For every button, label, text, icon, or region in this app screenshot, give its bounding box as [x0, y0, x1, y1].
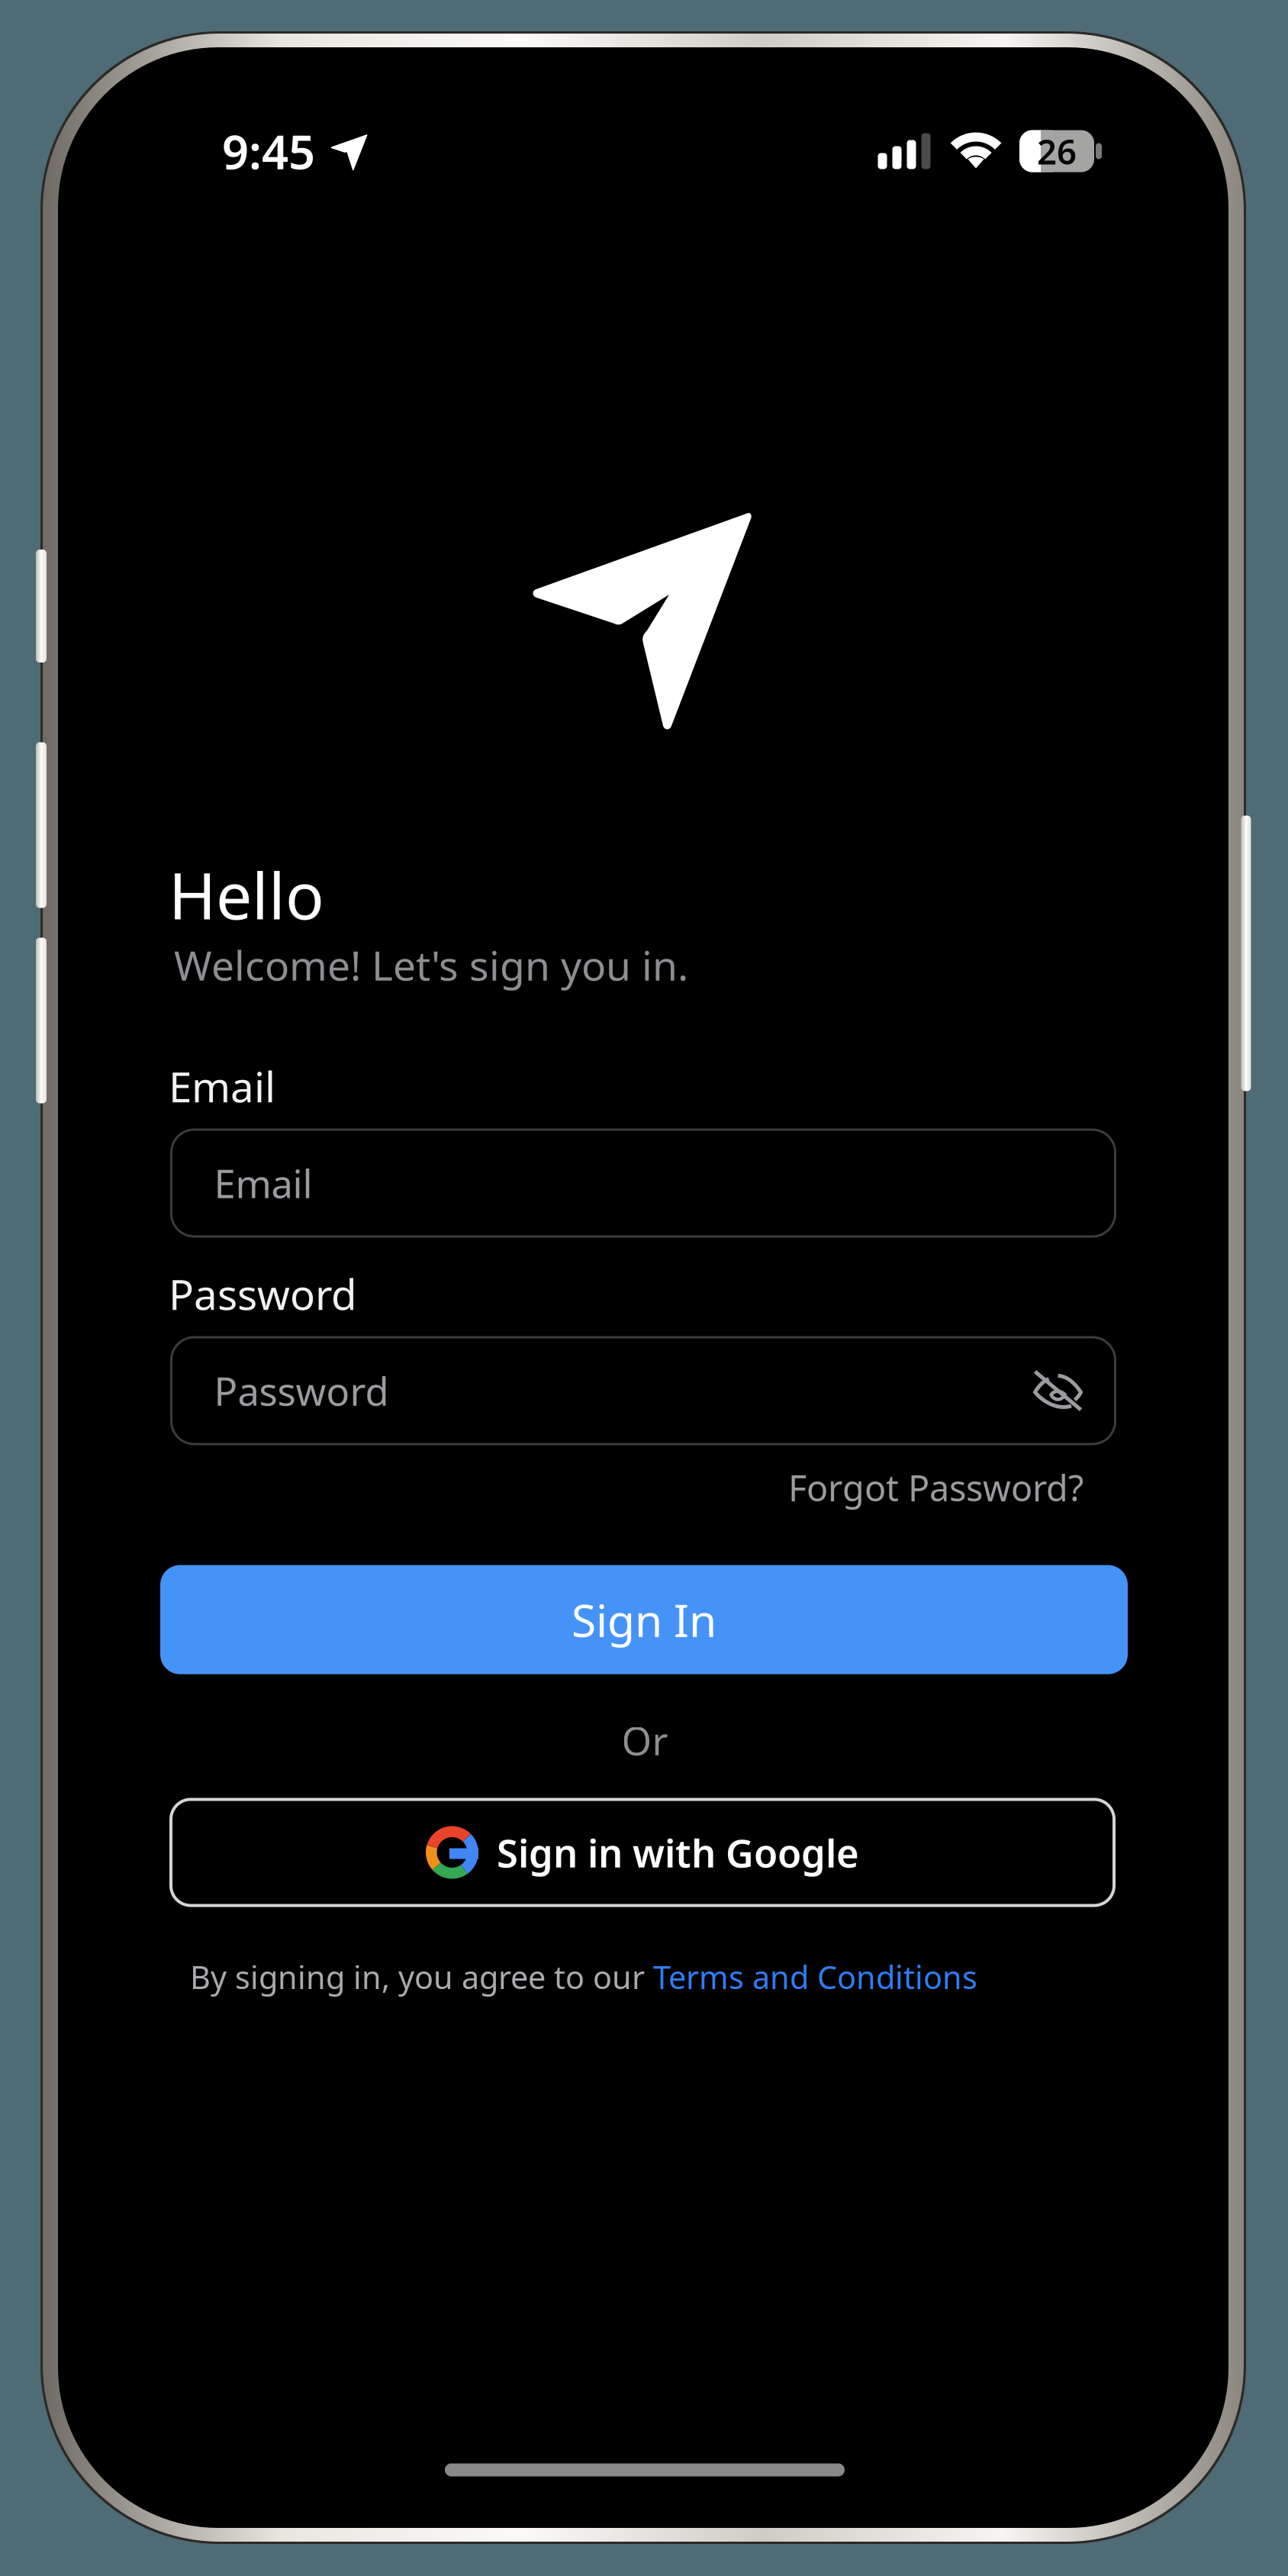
- staticText: Password: [169, 1266, 357, 1321]
- staticText: Or: [621, 1715, 668, 1766]
- staticText: Sign in with Google: [497, 1827, 859, 1878]
- button[interactable]: Forgot Password?: [763, 1461, 1084, 1514]
- button[interactable]: Sign In: [160, 1565, 1128, 1674]
- button[interactable]: Terms and Conditions: [653, 1956, 977, 1998]
- staticText: Password: [214, 1365, 389, 1416]
- staticText: 26: [1037, 128, 1077, 174]
- staticText: 9:45: [222, 120, 315, 182]
- staticText: Terms and Conditions: [653, 1956, 977, 1998]
- staticText: Hello: [169, 852, 324, 937]
- staticText: Sign In: [572, 1590, 716, 1649]
- button[interactable]: Sign in with Google: [171, 1799, 1114, 1905]
- staticText: Email: [169, 1058, 275, 1114]
- staticText: By signing in, you agree to our: [190, 1956, 653, 1998]
- staticText: Email: [214, 1157, 312, 1209]
- staticText: Welcome! Let's sign you in.: [174, 938, 688, 992]
- staticText: Forgot Password?: [788, 1464, 1084, 1511]
